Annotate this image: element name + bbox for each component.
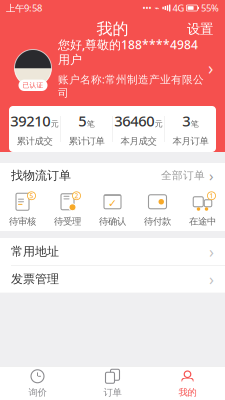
staticText: 常用地址 xyxy=(11,244,59,259)
staticText: 发票管理 xyxy=(11,272,59,286)
staticText: 4G xyxy=(170,2,186,14)
button[interactable]: 找物流订单 xyxy=(0,163,225,188)
staticText: 笔 xyxy=(87,119,95,129)
staticText: 设置 xyxy=(187,21,213,37)
staticText: 待付款 xyxy=(144,216,171,227)
staticText: 笔 xyxy=(191,119,199,129)
staticText: 1 xyxy=(209,191,213,200)
staticText: 待审核 xyxy=(9,216,36,227)
staticText: › xyxy=(209,241,214,262)
button[interactable]: 询价 xyxy=(0,367,75,400)
staticText: 5 xyxy=(78,111,86,130)
button[interactable]: 5 xyxy=(0,192,45,227)
staticText: 全部订单 xyxy=(161,169,205,182)
button[interactable]: 设置 xyxy=(179,17,221,41)
button[interactable]: 已认证 xyxy=(0,45,225,91)
staticText: 元 xyxy=(51,119,59,129)
staticText: 待受理 xyxy=(54,216,81,227)
button[interactable]: 1 xyxy=(180,192,225,227)
staticText: 36460 xyxy=(114,111,154,130)
button[interactable]: 订单 xyxy=(75,367,150,400)
staticText: › xyxy=(208,56,213,79)
staticText: 您好,尊敬的188****4984用户 xyxy=(58,36,198,67)
staticText: 询价 xyxy=(28,387,46,398)
staticText: 我的 xyxy=(96,19,128,39)
button[interactable]: 待付款 xyxy=(135,192,180,227)
staticText: › xyxy=(205,166,214,185)
staticText: 本月订单 xyxy=(172,135,208,147)
staticText: 55% xyxy=(199,2,219,14)
staticText: ⌁ xyxy=(151,3,162,13)
staticText: 上午9:58 xyxy=(6,2,42,14)
staticText: 2 xyxy=(74,191,78,200)
staticText: 在途中 xyxy=(189,216,216,227)
staticText: 我的 xyxy=(178,387,196,398)
button[interactable]: 发票管理 xyxy=(0,266,225,293)
staticText: 待确认 xyxy=(99,216,126,227)
staticText: 3 xyxy=(182,111,190,130)
button[interactable]: 常用地址 xyxy=(0,238,225,265)
staticText: ✓ xyxy=(108,197,117,209)
staticText: 累计订单 xyxy=(68,135,104,147)
staticText: ••• xyxy=(142,3,151,13)
staticText: 已认证 xyxy=(22,81,43,89)
staticText: 订单 xyxy=(103,387,121,398)
button[interactable]: 我的 xyxy=(150,367,225,400)
staticText: 账户名称:常州制造产业有限公司 xyxy=(58,72,204,99)
button[interactable]: ✓ xyxy=(90,192,135,227)
staticText: 元 xyxy=(155,119,163,129)
staticText: › xyxy=(209,268,214,290)
staticText: 39210 xyxy=(10,111,50,130)
staticText: 累计成交 xyxy=(17,135,53,147)
staticText: 本月成交 xyxy=(120,135,156,147)
staticText: 找物流订单 xyxy=(11,168,71,183)
button[interactable]: 2 xyxy=(45,192,90,227)
staticText: 5 xyxy=(29,191,33,200)
